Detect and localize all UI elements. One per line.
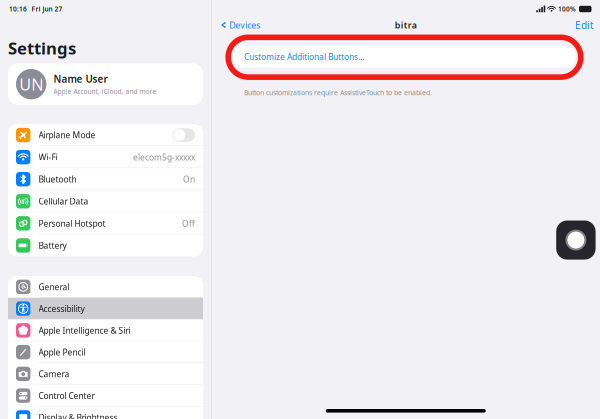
staticText: On bbox=[183, 174, 195, 185]
button[interactable]: Camera bbox=[8, 363, 203, 385]
button[interactable]: General bbox=[8, 276, 203, 298]
staticText: Apple Intelligence & Siri bbox=[39, 325, 131, 336]
staticText: Control Center bbox=[39, 390, 95, 401]
staticText: UN bbox=[19, 73, 43, 95]
staticText: Edit bbox=[575, 18, 594, 32]
staticText: Camera bbox=[39, 368, 70, 379]
staticText: Display & Brightness bbox=[39, 412, 118, 419]
staticText: Customize Additional Buttons… bbox=[244, 51, 365, 62]
staticText: Bluetooth bbox=[39, 174, 77, 185]
staticText: Settings bbox=[8, 37, 76, 59]
button[interactable]: Apple Intelligence & Siri bbox=[8, 319, 203, 341]
staticText: Off bbox=[182, 218, 195, 229]
staticText: 10:16 bbox=[9, 5, 27, 13]
button[interactable]: Bluetooth bbox=[8, 168, 203, 190]
button[interactable]: Devices bbox=[218, 18, 262, 31]
staticText: Battery bbox=[39, 240, 67, 251]
staticText: Wi-Fi bbox=[39, 151, 58, 163]
staticText: elecom5g-xxxxx bbox=[133, 151, 195, 163]
button[interactable]: Apple Pencil bbox=[8, 341, 203, 363]
staticText: Fri Jun 27 bbox=[31, 5, 62, 13]
staticText: General bbox=[39, 281, 70, 292]
button[interactable]: Control Center bbox=[8, 385, 203, 407]
staticText: Name User bbox=[53, 72, 107, 86]
button[interactable]: Customize Additional Buttons… bbox=[233, 46, 575, 68]
staticText: 100% bbox=[558, 5, 576, 13]
button[interactable]: Personal Hotspot bbox=[8, 212, 203, 234]
button[interactable]: Edit bbox=[572, 18, 597, 31]
staticText: Button customizations require AssistiveT… bbox=[244, 88, 432, 97]
staticText: Devices bbox=[229, 19, 260, 31]
button[interactable]: UN bbox=[8, 63, 203, 105]
button[interactable]: Wi-Fi bbox=[8, 146, 203, 168]
staticText: Cellular Data bbox=[39, 196, 89, 207]
button[interactable]: Battery bbox=[8, 234, 203, 256]
staticText: Apple Account, iCloud, and more bbox=[53, 87, 156, 96]
staticText: Apple Pencil bbox=[39, 346, 86, 358]
button[interactable]: Airplane Mode bbox=[8, 124, 203, 146]
button[interactable]: Accessibility bbox=[8, 298, 203, 320]
staticText: Personal Hotspot bbox=[39, 218, 106, 229]
staticText: bitra bbox=[395, 19, 417, 31]
staticText: Accessibility bbox=[39, 303, 85, 314]
button[interactable]: Display & Brightness bbox=[8, 406, 203, 419]
staticText: Airplane Mode bbox=[39, 129, 96, 141]
button[interactable]: Cellular Data bbox=[8, 190, 203, 212]
